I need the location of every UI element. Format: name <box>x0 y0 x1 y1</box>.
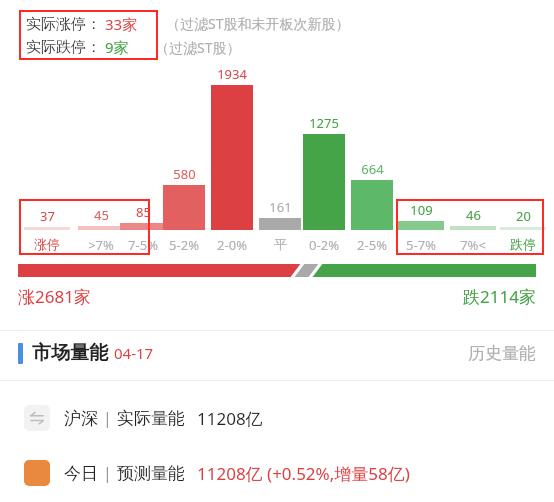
staticText: 实际跌停： <box>26 38 101 57</box>
staticText: 9家 <box>105 37 129 57</box>
button[interactable]: 实际量能 <box>0 395 554 441</box>
staticText: 20 <box>516 207 531 225</box>
staticText: 2-0% <box>217 236 247 254</box>
staticText: 涨2681家 <box>18 285 91 308</box>
staticText: 1934 <box>217 65 247 83</box>
staticText: 预测量能 <box>117 463 185 484</box>
staticText: 2-5% <box>357 236 387 254</box>
staticText: 实际涨停： <box>26 15 101 34</box>
button[interactable] <box>396 199 544 255</box>
staticText: （过滤ST股和未开板次新股） <box>166 14 350 33</box>
staticText: >7% <box>88 236 114 254</box>
staticText: 45 <box>94 206 109 224</box>
staticText: 沪深 <box>64 408 98 429</box>
staticText: 85 <box>136 203 151 221</box>
staticText: 跌停 <box>510 236 536 252</box>
button[interactable] <box>19 199 150 255</box>
other: 预测量能 <box>24 460 50 486</box>
other: 实际量能 <box>24 405 50 431</box>
staticText: 跌2114家 <box>463 285 536 308</box>
staticText: 664 <box>361 160 384 178</box>
staticText: 市场量能 <box>32 341 108 365</box>
staticText: 04-17 <box>114 343 154 363</box>
staticText: | <box>103 407 112 429</box>
staticText: | <box>103 462 112 484</box>
staticText: 实际量能 <box>117 408 185 429</box>
staticText: 161 <box>269 198 292 216</box>
staticText: （过滤ST股） <box>155 38 241 57</box>
staticText: 109 <box>410 201 433 219</box>
staticText: 33家 <box>105 14 138 34</box>
staticText: 11208亿 <box>197 407 263 430</box>
staticText: 1275 <box>309 114 339 132</box>
button[interactable]: 实际涨停： <box>19 10 158 60</box>
staticText: 涨停 <box>34 236 60 252</box>
staticText: 11208亿 (+0.52%,增量58亿) <box>197 462 410 485</box>
staticText: 今日 <box>64 463 98 484</box>
staticText: 7%< <box>460 236 486 254</box>
staticText: 历史量能 <box>468 343 536 364</box>
staticText: 37 <box>40 207 55 225</box>
staticText: 580 <box>173 165 196 183</box>
staticText: 5-2% <box>169 236 199 254</box>
staticText: 0-2% <box>309 236 339 254</box>
staticText: 7-5% <box>128 236 158 254</box>
staticText: 平 <box>274 236 287 252</box>
staticText: 46 <box>466 206 481 224</box>
button[interactable]: 预测量能 <box>0 450 554 496</box>
button[interactable]: 历史量能 <box>468 343 536 364</box>
staticText: 5-7% <box>406 236 436 254</box>
